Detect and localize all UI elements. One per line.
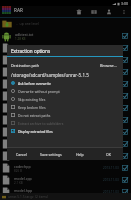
staticText: 2013-11-03: [103, 166, 119, 170]
staticText: 1.4 KB: [14, 193, 23, 197]
staticText: Help: [76, 152, 84, 157]
staticText: adbtest.txt: [15, 32, 34, 37]
button[interactable]: .. up one level: [0, 17, 131, 30]
button[interactable]: model.cpp: [0, 174, 131, 186]
button[interactable]: Keep broken files: [7, 103, 123, 111]
staticText: model.hpp: [14, 92, 33, 97]
button[interactable]: Save settings: [36, 148, 65, 161]
staticText: /storage/sdcard/samples/unrar-5.1.5: [11, 72, 89, 78]
staticText: 3:00: [121, 1, 129, 6]
staticText: Extraction options: [11, 48, 51, 54]
staticText: Extract archive to subfolders: [18, 121, 64, 126]
staticText: 5.6 KB: [14, 121, 23, 125]
button[interactable]: coder.hpp: [0, 66, 131, 78]
button[interactable]: More options: [116, 6, 131, 18]
staticText: Browse...: [100, 63, 118, 68]
button[interactable]: Add files: [101, 6, 116, 18]
staticText: smalldata.hpp: [14, 44, 39, 49]
button[interactable]: Cancel: [7, 148, 36, 161]
staticText: 1.3 KB: [14, 157, 23, 161]
staticText: 2.1 KB: [14, 181, 23, 185]
staticText: Cancel: [16, 152, 27, 157]
button[interactable]: coder.hpp: [0, 162, 131, 174]
button[interactable]: Extract archive to subfolders: [7, 119, 123, 127]
staticText: model.cpp: [14, 176, 32, 181]
staticText: Save settings: [40, 152, 62, 157]
staticText: Display extracted files: [18, 129, 53, 134]
staticText: Skip existing files: [18, 97, 46, 102]
staticText: 1.4 KB: [14, 97, 23, 101]
staticText: Destination path: [11, 63, 40, 68]
staticText: 1.3 KB: [14, 61, 23, 65]
staticText: suballoc.hpp: [14, 104, 36, 109]
staticText: Ask before overwrite: [18, 81, 51, 86]
staticText: 1.18 KB: [14, 49, 25, 53]
button[interactable]: Browse...: [97, 62, 121, 69]
staticText: Overwrite without prompt: [18, 89, 60, 94]
button[interactable]: Delete: [71, 6, 86, 18]
staticText: Do not extract paths: [18, 113, 51, 118]
staticText: RAR: [14, 7, 23, 13]
staticText: 2013-11-03: [103, 178, 119, 182]
button[interactable]: Archive: [86, 6, 101, 18]
staticText: unrar-5.1.5.tar.gz (2 items): [8, 195, 48, 199]
button[interactable]: Display extracted files: [7, 127, 123, 135]
staticText: coder.hpp: [14, 164, 31, 169]
staticText: 1.28 KB: [15, 37, 26, 41]
button[interactable]: rarvm.cpp: [0, 114, 131, 126]
button[interactable]: coder.cpp: [0, 150, 131, 162]
button[interactable]: model.hpp: [0, 186, 131, 198]
staticText: rarvm.cpp: [14, 116, 32, 121]
button[interactable]: rarvm.hpp: [0, 126, 131, 138]
button[interactable]: smalldata.hpp: [0, 138, 131, 150]
button[interactable]: Skip existing files: [7, 95, 123, 103]
button[interactable]: model.hpp: [0, 90, 131, 102]
button[interactable]: adbtest.txt: [0, 30, 131, 42]
staticText: rarvm.hpp: [14, 128, 32, 133]
staticText: 1.18 KB: [14, 145, 25, 149]
staticText: .. up one level: [16, 21, 39, 26]
button[interactable]: suballoc.hpp: [0, 102, 131, 114]
button[interactable]: Help: [65, 148, 94, 161]
staticText: 2013-11-03: [103, 190, 119, 194]
button[interactable]: model.cpp: [0, 78, 131, 90]
button[interactable]: Do not extract paths: [7, 111, 123, 119]
staticText: 2013-11-03: [103, 154, 119, 158]
button[interactable]: Overwrite without prompt: [7, 87, 123, 95]
staticText: 826 B: [14, 169, 22, 173]
button[interactable]: smalldata.hpp: [0, 42, 131, 54]
button[interactable]: OK: [94, 148, 123, 161]
staticText: 826 B: [14, 73, 22, 77]
staticText: model.cpp: [14, 80, 32, 85]
staticText: model.hpp: [14, 188, 33, 193]
button[interactable]: Ask before overwrite: [7, 79, 123, 87]
button[interactable]: coder.cpp: [0, 54, 131, 66]
staticText: coder.cpp: [14, 56, 31, 61]
staticText: Keep broken files: [18, 105, 46, 110]
staticText: OK: [106, 152, 111, 157]
staticText: coder.cpp: [14, 152, 31, 157]
